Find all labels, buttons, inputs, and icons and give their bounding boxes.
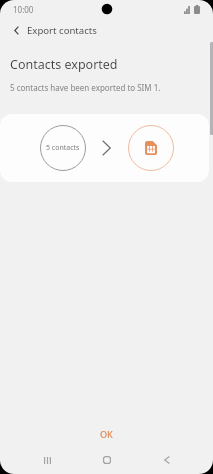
button[interactable]: Navigate up	[4, 20, 28, 41]
staticText: 5 contacts	[46, 143, 80, 153]
button[interactable]: Recent apps	[32, 445, 62, 474]
staticText: Export contacts	[27, 24, 97, 37]
button[interactable]: 5 contacts	[0, 114, 209, 182]
staticText: 10:00	[13, 4, 34, 15]
button[interactable]: OK	[0, 421, 213, 447]
staticText: Contacts exported	[10, 56, 118, 73]
button[interactable]: Home	[92, 445, 122, 474]
button[interactable]: Back	[152, 445, 182, 474]
staticText: OK	[100, 428, 113, 440]
staticText: 5 contacts have been exported to SIM 1.	[10, 82, 161, 93]
